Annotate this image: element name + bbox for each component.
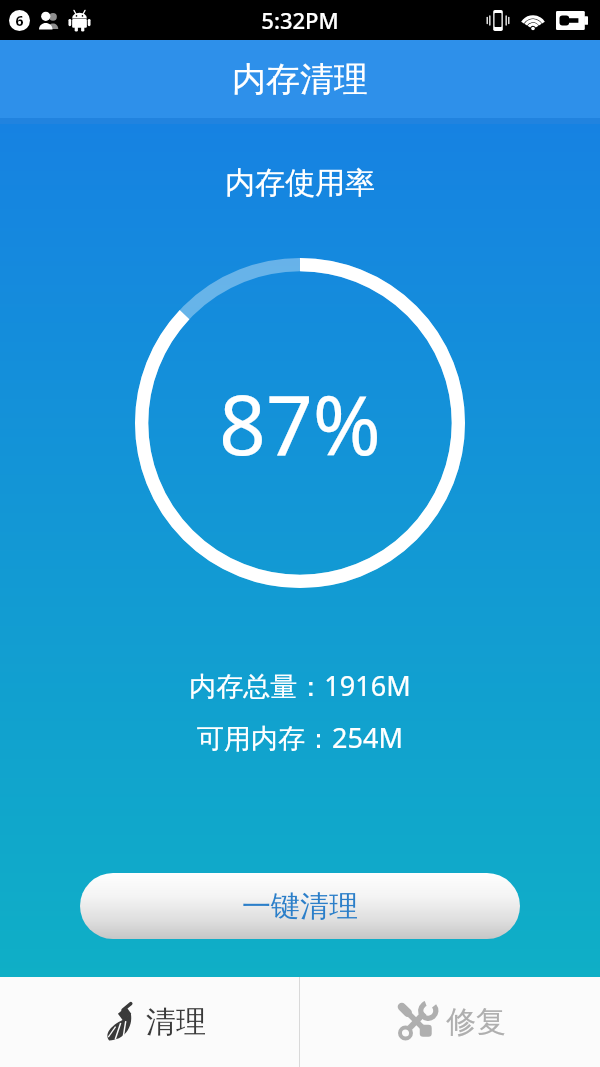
staticText: 内存总量：1916M [189, 667, 411, 704]
staticText: 清理 [146, 1003, 206, 1041]
staticText: 一键清理 [242, 888, 358, 925]
staticText: 修复 [446, 1003, 506, 1041]
staticText: 可用内存：254M [197, 719, 403, 756]
staticText: 5:32PM [261, 5, 339, 35]
button[interactable]: Repair [300, 977, 600, 1067]
button[interactable]: 一键清理 [80, 873, 520, 939]
staticText: 87% [219, 367, 381, 479]
staticText: 6 [15, 11, 24, 30]
staticText: 内存使用率 [225, 164, 375, 202]
staticText: 内存清理 [232, 58, 368, 101]
button[interactable]: Clean [0, 977, 299, 1067]
